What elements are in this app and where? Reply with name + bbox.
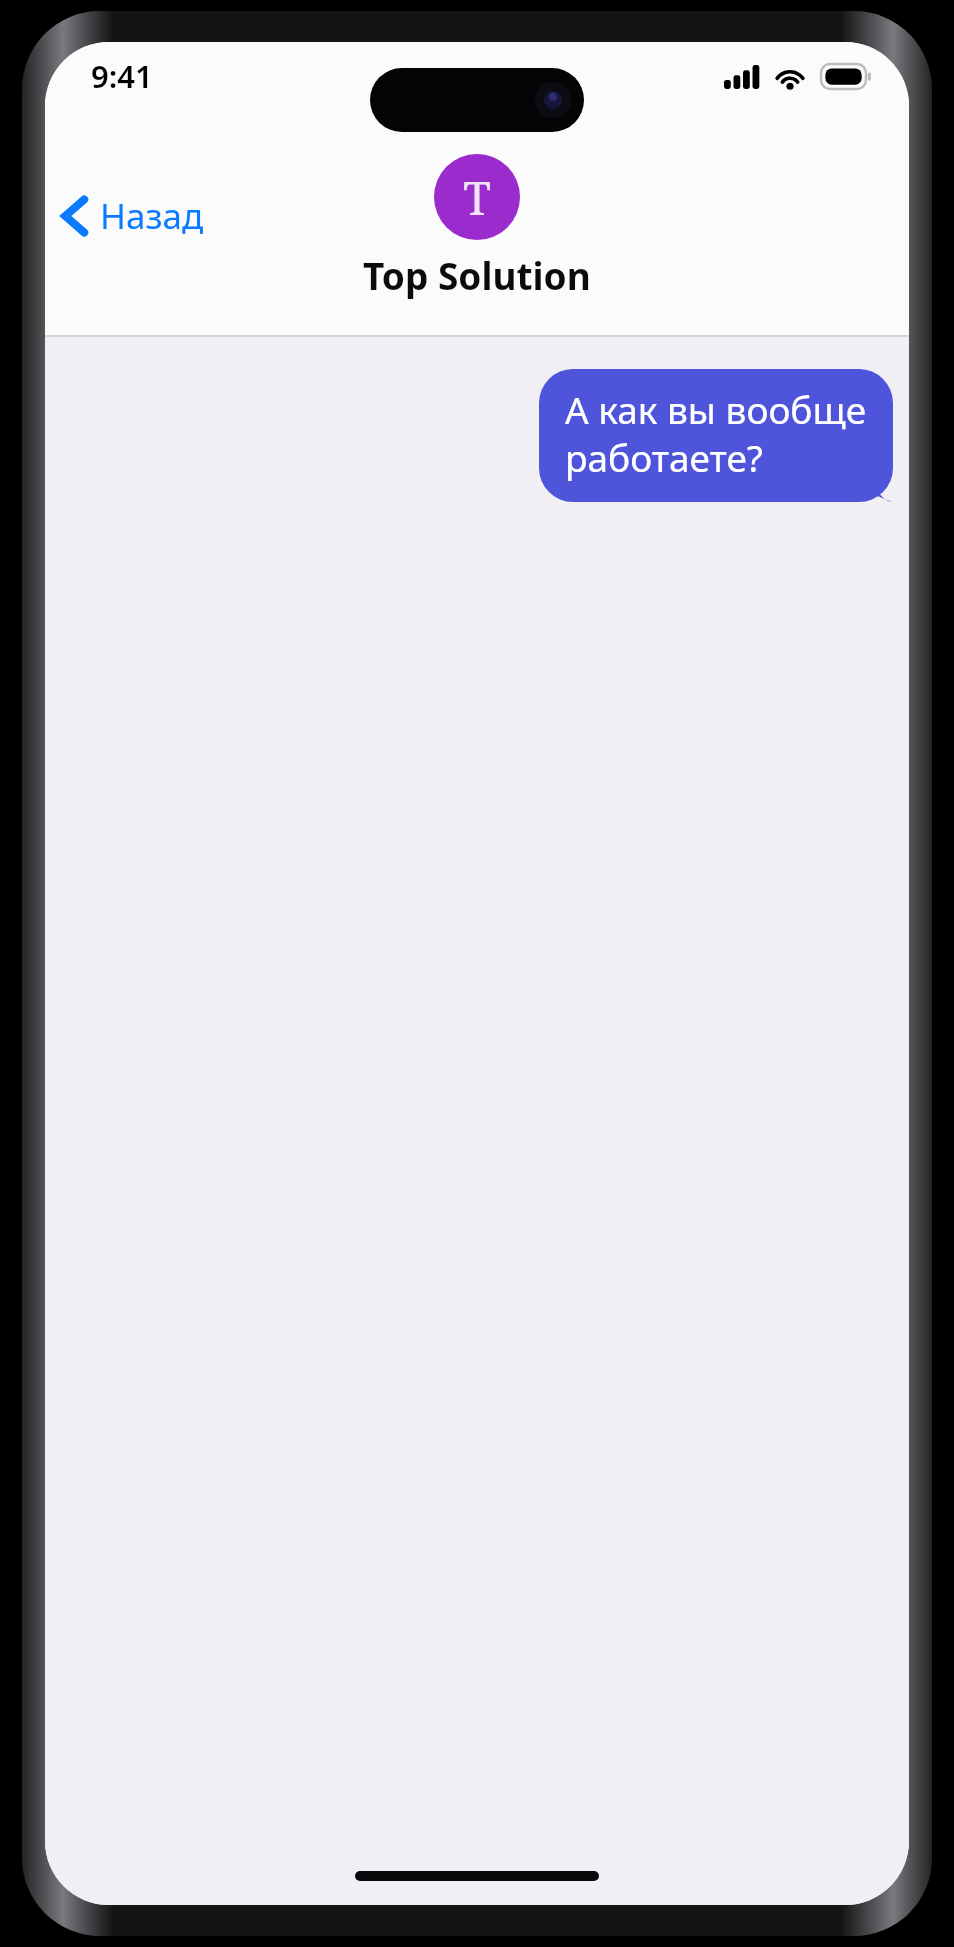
- staticText: 9:41: [91, 55, 153, 97]
- staticText: Top Solution: [363, 250, 591, 300]
- staticText: А как вы вообще работаете?: [565, 384, 867, 483]
- other: Back: [61, 193, 88, 239]
- staticText: Назад: [100, 192, 204, 240]
- staticText: T: [463, 167, 491, 228]
- button[interactable]: А как вы вообще работаете?: [539, 369, 893, 502]
- button[interactable]: Back: [45, 184, 224, 252]
- button[interactable]: T: [363, 154, 591, 300]
